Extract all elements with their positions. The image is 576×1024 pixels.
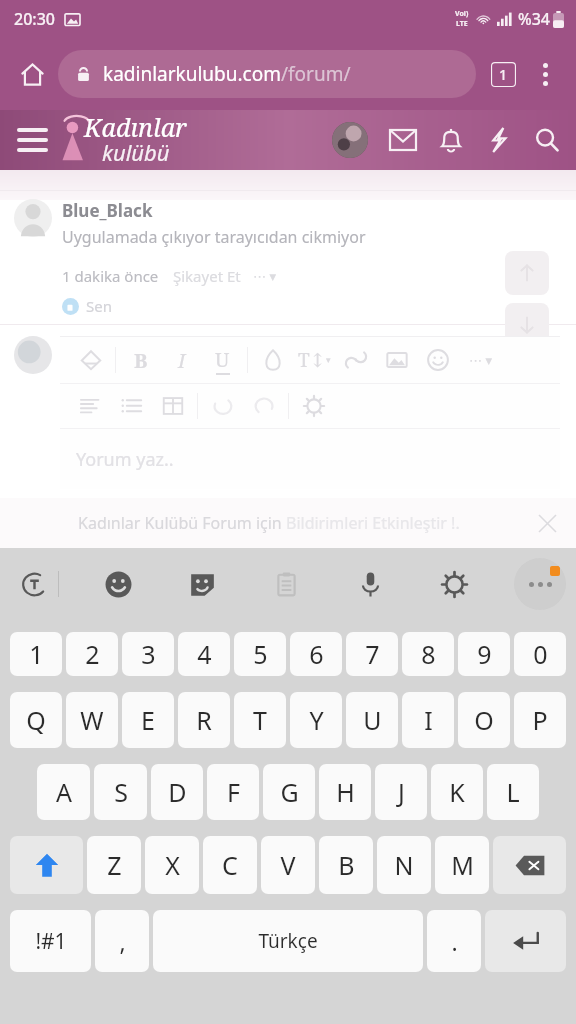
staticText: kulübü (102, 137, 170, 163)
button[interactable]: U (346, 692, 398, 748)
button[interactable]: , (95, 910, 149, 972)
button[interactable]: 0 (514, 632, 566, 676)
button[interactable]: Z (87, 836, 141, 894)
staticText: 6 (309, 637, 324, 671)
button[interactable]: S (94, 764, 147, 820)
staticText: Yorum yaz.. (76, 447, 174, 472)
button[interactable]: 4 (178, 632, 230, 676)
staticText: Sen (86, 296, 112, 316)
button[interactable]: L (487, 764, 539, 820)
button[interactable]: A (37, 764, 90, 820)
button[interactable]: Emoji (94, 560, 142, 608)
button[interactable]: Tabs: 1 (482, 53, 524, 95)
button[interactable]: 5 (234, 632, 286, 676)
staticText: V (280, 848, 296, 882)
button[interactable]: B (120, 340, 161, 380)
button[interactable]: M (435, 836, 489, 894)
button[interactable]: Change keyboard (10, 560, 58, 608)
button[interactable]: F (207, 764, 259, 820)
staticText: Q (26, 703, 46, 737)
button[interactable]: Menu (8, 116, 56, 164)
button[interactable]: Messages (386, 123, 420, 157)
button[interactable]: X (145, 836, 199, 894)
button[interactable]: Clipboard (262, 560, 310, 608)
button[interactable]: Home (10, 52, 54, 96)
staticText: , (119, 926, 126, 957)
button[interactable]: O (458, 692, 510, 748)
button[interactable] (70, 340, 111, 380)
staticText: Şikayet Et (173, 266, 241, 286)
button[interactable]: C (203, 836, 257, 894)
button[interactable] (252, 340, 293, 380)
button[interactable]: 8 (402, 632, 454, 676)
button[interactable]: Q (10, 692, 62, 748)
button[interactable]: T (234, 692, 286, 748)
button[interactable] (293, 386, 334, 426)
button[interactable]: Scroll up (505, 251, 549, 295)
button[interactable] (376, 340, 417, 380)
staticText: U (215, 346, 230, 373)
button[interactable]: . (427, 910, 481, 972)
staticText: 1 (499, 65, 508, 84)
staticText: Z (107, 848, 122, 882)
button[interactable]: 9 (458, 632, 510, 676)
button[interactable] (243, 386, 284, 426)
button[interactable]: G (263, 764, 315, 820)
button[interactable]: 7 (346, 632, 398, 676)
button[interactable]: W (66, 692, 118, 748)
button[interactable]: kadinlarkulubu.com (58, 50, 476, 98)
button[interactable]: Enter (485, 910, 566, 972)
button[interactable]: B (319, 836, 373, 894)
button[interactable]: R (178, 692, 230, 748)
button[interactable]: H (319, 764, 371, 820)
button[interactable]: Stickers (178, 560, 226, 608)
button[interactable]: Close (534, 510, 560, 536)
staticText: 2 (85, 637, 100, 671)
button[interactable]: N (377, 836, 431, 894)
button[interactable]: Scroll down (505, 303, 549, 347)
button[interactable]: 2 (66, 632, 118, 676)
button[interactable]: 6 (290, 632, 342, 676)
button[interactable]: V (261, 836, 315, 894)
button[interactable]: 1 (10, 632, 62, 676)
button[interactable]: Notifications (434, 123, 468, 157)
button[interactable]: B (60, 336, 560, 489)
staticText: A (56, 775, 72, 809)
button[interactable]: More (514, 558, 566, 610)
button[interactable]: I (402, 692, 454, 748)
button[interactable]: E (122, 692, 174, 748)
button[interactable]: !#1 (10, 910, 91, 972)
button[interactable]: K (431, 764, 483, 820)
button[interactable]: Türkçe (153, 910, 423, 972)
button[interactable] (111, 386, 152, 426)
staticText: 0 (533, 637, 548, 671)
staticText: ⋯ ▾ (253, 267, 276, 285)
button[interactable] (70, 386, 111, 426)
button[interactable]: Backspace (493, 836, 566, 894)
staticText: J (398, 775, 405, 809)
button[interactable]: D (151, 764, 203, 820)
button[interactable]: Settings (430, 560, 478, 608)
button[interactable]: Y (290, 692, 342, 748)
button[interactable]: J (375, 764, 427, 820)
button[interactable]: U (202, 340, 243, 380)
button[interactable]: Activity (482, 123, 516, 157)
button[interactable]: Kadınlar Kulübü Forum için (0, 498, 576, 548)
staticText: %34 (518, 8, 550, 30)
button[interactable] (152, 386, 193, 426)
button[interactable] (202, 386, 243, 426)
button[interactable]: 3 (122, 632, 174, 676)
button[interactable]: Voice input (346, 560, 394, 608)
button[interactable]: P (514, 692, 566, 748)
button[interactable]: Profile (332, 122, 368, 158)
button[interactable] (335, 340, 376, 380)
staticText: B (134, 347, 148, 374)
button[interactable] (417, 340, 458, 380)
button[interactable]: I (161, 340, 202, 380)
button[interactable]: More options (524, 53, 566, 95)
staticText: Kadınlar (84, 110, 187, 144)
staticText: T (253, 703, 267, 737)
button[interactable]: Search (530, 123, 564, 157)
staticText: 1 (29, 637, 44, 671)
button[interactable]: Shift (10, 836, 83, 894)
